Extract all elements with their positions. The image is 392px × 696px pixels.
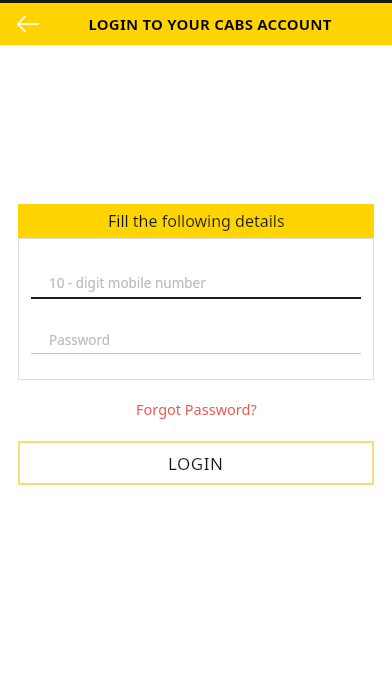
staticText: Fill the following details <box>108 210 285 232</box>
button[interactable]: Back <box>6 3 50 45</box>
staticText: LOGIN TO YOUR CABS ACCOUNT <box>88 14 332 34</box>
staticText: 10 - digit mobile number <box>49 274 206 292</box>
button[interactable]: Password <box>31 327 361 354</box>
staticText: LOGIN <box>168 452 224 475</box>
button[interactable]: Forgot Password? <box>128 396 265 422</box>
button[interactable]: 10 - digit mobile number <box>31 269 361 299</box>
staticText: Forgot Password? <box>136 399 257 419</box>
staticText: Password <box>49 331 111 349</box>
button[interactable]: LOGIN <box>18 441 374 485</box>
